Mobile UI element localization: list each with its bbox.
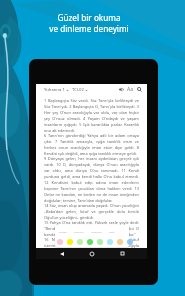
staticText: 9 Dünyaya gelen, her insanı aydınlatan g… <box>44 156 139 203</box>
button[interactable]: Highlight colour <box>127 239 133 245</box>
staticText: TCL02 <box>72 87 84 93</box>
button[interactable]: Highlight colour <box>57 239 63 245</box>
button[interactable]: Yuhanna 1 <box>44 87 69 93</box>
staticText: SARI/ALT <box>74 231 84 234</box>
staticText: Aa <box>127 86 134 93</box>
staticText: ve dinleme deneyimi <box>49 23 129 34</box>
button[interactable]: Search <box>135 85 144 94</box>
button[interactable]: Listen <box>117 85 126 94</box>
button[interactable]: Recents <box>117 248 128 259</box>
staticText: 6 Tanrı'nın gönderdiği Yahya adlı bir ad… <box>44 133 139 156</box>
button[interactable]: Back <box>56 248 67 259</box>
staticText: PEMBE <box>59 231 67 234</box>
staticText: 16 Nitekim hepimiz O'nun doluluğundan lü… <box>44 237 139 248</box>
button[interactable]: Highlight colour <box>107 239 113 245</box>
staticText: 15 Yahya O'na tanıklık etti. Yüksek sesl… <box>44 220 139 237</box>
staticText: 14 Söz, insan olup aramızda yaşadı. O'nu… <box>44 203 139 220</box>
staticText: TURUNCU <box>91 231 102 234</box>
button[interactable]: Highlight colour <box>77 239 83 245</box>
button[interactable]: Highlight colour <box>67 239 73 245</box>
staticText: 1 Başlangıçta Söz vardı. Söz Tanrı'yla b… <box>44 98 139 133</box>
button[interactable]: Highlight colour <box>87 239 93 245</box>
staticText: Güzel bir okuma <box>57 12 121 23</box>
button[interactable]: Home <box>86 248 97 259</box>
staticText: YEŞİL <box>109 231 115 234</box>
button[interactable]: Highlight colour <box>117 239 123 245</box>
button[interactable]: Highlight colour <box>97 239 103 245</box>
button[interactable]: Text settings <box>126 85 135 94</box>
staticText: Yuhanna 1 <box>44 87 65 93</box>
button[interactable]: TCL02 <box>72 87 88 93</box>
